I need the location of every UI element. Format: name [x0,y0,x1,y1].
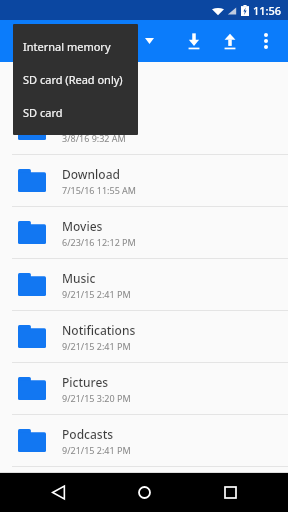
staticText: 7/15/16 11:55 AM [62,184,137,196]
button[interactable]: Music [0,259,288,310]
staticText: SD card [23,105,63,120]
button[interactable]: Pictures [0,363,288,414]
button[interactable]: SD card (Read only) [13,63,138,96]
staticText: Download [62,166,120,182]
staticText: Pictures [62,374,109,390]
staticText: 6/23/16 12:12 PM [62,236,136,248]
button[interactable]: Alarms [0,103,288,154]
button[interactable]: Movies [0,207,288,258]
staticText: Podcasts [62,426,114,442]
staticText: 9/21/15 2:41 PM [62,288,131,300]
button[interactable]: Download [176,20,212,62]
button[interactable]: Podcasts [0,415,288,466]
staticText: 9/21/15 3:20 PM [62,392,131,404]
button[interactable]: Back [30,473,86,512]
button[interactable]: Internal memory [13,30,138,63]
button[interactable] [12,20,154,62]
staticText: Music [62,270,96,286]
staticText: 9/21/15 2:41 PM [62,444,131,456]
button[interactable]: Recent apps [202,473,258,512]
button[interactable]: Home [116,473,172,512]
button[interactable]: SD card [13,96,138,129]
staticText: 11:56 [253,3,282,18]
button[interactable]: More options [248,20,284,62]
staticText: 9/21/15 2:41 PM [62,340,131,352]
staticText: 3/8/16 9:32 AM [62,132,126,144]
button[interactable]: Notifications [0,311,288,362]
button[interactable]: Upload [212,20,248,62]
staticText: Notifications [62,322,136,338]
staticText: Movies [62,218,103,234]
staticText: SD card (Read only) [23,72,123,87]
staticText: Internal memory [23,39,111,54]
button[interactable]: Download [0,155,288,206]
